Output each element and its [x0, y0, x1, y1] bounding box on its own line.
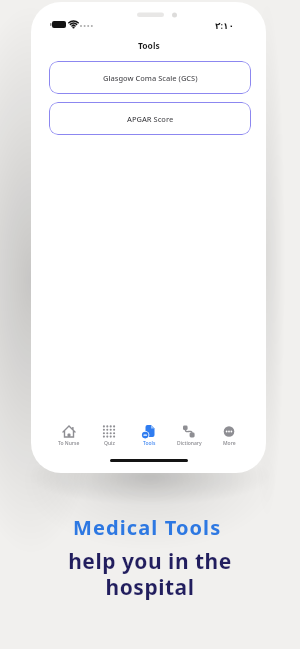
staticText: Dictionary	[177, 440, 202, 447]
staticText: Glasgow Coma Scale (GCS)	[103, 73, 198, 83]
staticText: APGAR Score	[127, 114, 174, 124]
button[interactable]: Dictionary	[169, 423, 209, 455]
staticText: ٢:١٠	[215, 19, 235, 31]
button[interactable]: To Nurse	[48, 423, 89, 455]
staticText: Quiz	[104, 440, 115, 447]
staticText: help you in the hospital	[68, 547, 232, 602]
button[interactable]: Quiz	[89, 423, 129, 455]
staticText: Tools	[143, 440, 156, 447]
staticText: Medical Tools	[73, 514, 222, 541]
button[interactable]: Tools	[129, 423, 169, 455]
button[interactable]: Glasgow Coma Scale (GCS)	[49, 61, 251, 94]
button[interactable]: APGAR Score	[49, 102, 251, 135]
staticText: To Nurse	[58, 440, 80, 447]
button[interactable]: More	[209, 423, 249, 455]
staticText: Tools	[138, 40, 160, 52]
staticText: More	[223, 440, 236, 447]
